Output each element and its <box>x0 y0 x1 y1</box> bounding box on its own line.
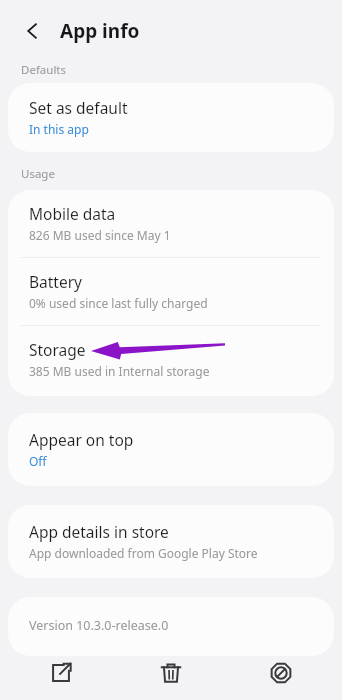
button[interactable]: Force stop <box>226 656 336 700</box>
staticText: In this app <box>29 121 89 137</box>
staticText: 0% used since last fully charged <box>29 295 208 311</box>
staticText: Storage <box>29 339 86 360</box>
button[interactable]: Uninstall <box>116 656 226 700</box>
staticText: Appear on top <box>29 429 134 450</box>
staticText: App downloaded from Google Play Store <box>29 545 258 561</box>
staticText: Defaults <box>21 62 67 78</box>
button[interactable]: Appear on top <box>8 413 334 486</box>
button[interactable]: Battery <box>8 258 334 325</box>
staticText: Off <box>29 453 47 469</box>
staticText: 826 MB used since May 1 <box>29 227 171 243</box>
staticText: Battery <box>29 271 83 292</box>
staticText: Mobile data <box>29 203 116 224</box>
staticText: 385 MB used in Internal storage <box>29 363 210 379</box>
button[interactable]: Open <box>6 656 116 700</box>
staticText: App details in store <box>29 521 169 542</box>
button[interactable]: Storage <box>8 326 334 396</box>
button[interactable]: Set as default <box>8 83 334 152</box>
staticText: Version 10.3.0-release.0 <box>29 617 169 634</box>
button[interactable]: App details in store <box>8 505 334 578</box>
button[interactable]: Mobile data <box>8 190 334 257</box>
staticText: Set as default <box>29 97 128 118</box>
staticText: App info <box>60 18 140 44</box>
staticText: Usage <box>21 166 55 182</box>
button[interactable]: Back <box>18 16 48 46</box>
